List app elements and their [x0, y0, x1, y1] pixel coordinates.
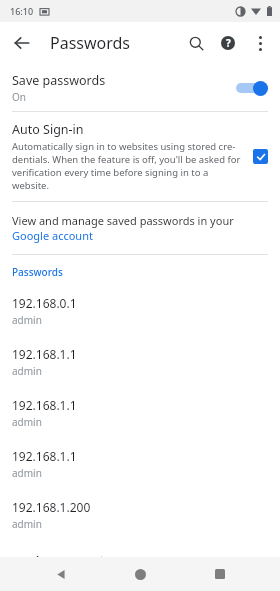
- staticText: 192.168.1.200: [12, 499, 91, 515]
- button[interactable]: 192.168.1.1: [0, 438, 280, 489]
- staticText: 192.168.1.1: [12, 397, 77, 413]
- staticText: admin: [12, 517, 42, 531]
- button[interactable]: More options: [244, 27, 276, 59]
- button[interactable]: Back: [42, 557, 80, 591]
- button[interactable]: Help: [212, 27, 244, 59]
- staticText: admin: [12, 313, 42, 327]
- button[interactable]: Recent apps: [201, 557, 239, 591]
- button[interactable]: Search: [180, 27, 212, 59]
- button[interactable]: Auto Sign-in: [0, 112, 280, 201]
- staticText: admin: [12, 466, 42, 480]
- button[interactable]: 192.168.1.200: [0, 489, 280, 540]
- button[interactable]: 192.168.0.1: [0, 285, 280, 336]
- button[interactable]: sso.1mgaccounts.com: [0, 540, 280, 557]
- staticText: admin: [12, 415, 42, 429]
- staticText: Auto Sign-in: [12, 121, 84, 138]
- button[interactable]: 192.168.1.1: [0, 336, 280, 387]
- staticText: Passwords: [50, 32, 131, 54]
- button[interactable]: 192.168.1.1: [0, 387, 280, 438]
- button[interactable]: View and manage saved passwords in your …: [0, 202, 280, 254]
- button[interactable]: Back: [6, 27, 38, 59]
- staticText: On: [12, 90, 26, 104]
- staticText: sso.1mgaccounts.com: [12, 552, 138, 557]
- staticText: 192.168.1.1: [12, 346, 77, 362]
- staticText: Save passwords: [12, 72, 106, 89]
- staticText: 16:10: [10, 5, 34, 17]
- staticText: 192.168.1.1: [12, 448, 77, 464]
- button[interactable]: Home: [121, 557, 159, 591]
- staticText: Automatically sign in to websites using …: [12, 140, 245, 192]
- staticText: admin: [12, 364, 42, 378]
- staticText: ?: [226, 36, 231, 50]
- staticText: View and manage saved passwords in your …: [12, 213, 268, 243]
- staticText: Passwords: [12, 265, 63, 279]
- button[interactable]: Save passwords: [0, 64, 280, 111]
- staticText: 192.168.0.1: [12, 295, 77, 311]
